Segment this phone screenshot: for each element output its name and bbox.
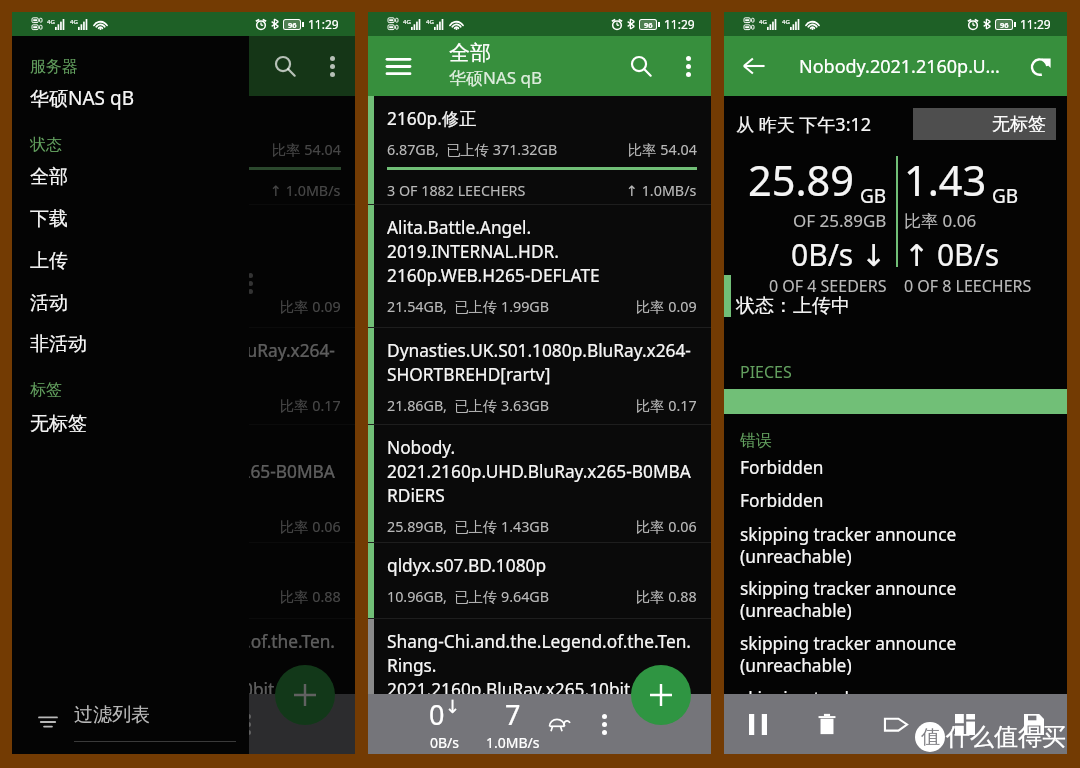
staticText: SHORTBREHD[rartv] — [31, 363, 341, 387]
button[interactable]: Nobody. — [12, 425, 355, 542]
staticText: 2160p.修正 — [31, 107, 341, 131]
button[interactable]: qldyx.s07.BD.1080p — [368, 543, 711, 618]
staticText: 比率 0.06 — [636, 517, 697, 537]
button[interactable]: Alternative speed limits — [541, 707, 575, 741]
staticText: 比率 0.88 — [636, 587, 697, 607]
staticText: ↑ 0B/s — [904, 234, 1000, 275]
staticText: 华硕NAS qB — [449, 66, 543, 89]
staticText: 0 — [429, 696, 445, 733]
staticText: 比率 0.88 — [280, 587, 341, 607]
staticText: 全部 — [30, 165, 68, 189]
button[interactable]: Add torrent — [275, 665, 335, 725]
button[interactable]: 无标签 — [12, 403, 249, 445]
button[interactable]: 华硕NAS qB — [12, 77, 249, 119]
staticText: ↓ — [89, 696, 105, 717]
staticText: 比率 0.06 — [280, 517, 341, 537]
staticText: 21.86GB, 已上传 3.63GB — [387, 396, 550, 416]
staticText: 21.54GB, 已上传 1.99GB — [31, 297, 194, 317]
staticText: 非活动 — [30, 332, 87, 356]
button[interactable]: Dynasties.UK.S01.1080p.BluRay.x264- — [12, 328, 355, 424]
staticText: skipping tracker announce (unreachable) — [740, 577, 957, 622]
staticText: 3 OF 1882 LEECHERS — [387, 181, 526, 200]
staticText: Shang-Chi.and.the.Legend.of.the.Ten. — [387, 630, 697, 654]
button[interactable]: Categories — [941, 700, 989, 748]
staticText: 2021.2160p.BluRay.x265.10bit. — [31, 678, 341, 702]
staticText: 4G — [403, 18, 411, 26]
staticText: Forbidden — [740, 456, 824, 480]
staticText: PIECES — [740, 361, 792, 383]
staticText: 7 — [505, 696, 521, 733]
button[interactable]: Alita.Battle.Angel. — [12, 205, 355, 327]
staticText: 比率 0.09 — [280, 297, 341, 317]
staticText: 错误 — [740, 431, 772, 451]
button[interactable]: Tags — [872, 700, 920, 748]
button[interactable]: 非活动 — [12, 323, 249, 365]
button[interactable]: Refresh — [1015, 40, 1067, 92]
button[interactable]: More options — [665, 43, 711, 89]
button[interactable]: Search — [617, 42, 665, 90]
button[interactable]: Open navigation drawer — [368, 36, 428, 96]
staticText: 0 OF 4 SEEDERS — [769, 275, 887, 297]
button[interactable]: Pause — [734, 700, 782, 748]
button[interactable]: Search — [261, 42, 309, 90]
button[interactable]: 2160p.修正 — [12, 96, 355, 204]
button[interactable]: More options — [586, 706, 622, 742]
staticText: 2160p.WEB.H265-DEFLATE — [31, 264, 341, 288]
button[interactable]: Add torrent — [631, 665, 691, 725]
staticText: skipping tracker announce — [740, 687, 957, 711]
staticText: 上传 — [30, 249, 68, 273]
staticText: 1.0MB/s — [130, 733, 184, 752]
staticText: 从 昨天 下午3:12 — [736, 112, 872, 137]
staticText: Dynasties.UK.S01.1080p.BluRay.x264- — [387, 339, 697, 363]
staticText: ↑ 1.0MB/s — [626, 181, 697, 200]
staticText: Nobody. — [387, 436, 697, 460]
staticText: Forbidden — [740, 489, 824, 513]
button[interactable]: Dynasties.UK.S01.1080p.BluRay.x264- — [368, 328, 711, 424]
button[interactable]: Alita.Battle.Angel. — [368, 205, 711, 327]
staticText: Rings. — [387, 654, 697, 678]
button[interactable]: Shang-Chi.and.the.Legend.of.the.Ten. — [368, 619, 711, 739]
button[interactable]: More options — [309, 43, 355, 89]
staticText: 活动 — [30, 291, 68, 315]
staticText: 比率 0.17 — [280, 396, 341, 416]
staticText: 比率 54.04 — [272, 140, 341, 160]
staticText: 什么值得买 — [946, 722, 1066, 752]
button[interactable]: Delete — [803, 700, 851, 748]
staticText: 0B/s — [74, 733, 104, 752]
staticText: 无标签 — [992, 113, 1046, 136]
staticText: 2021.2160p.BluRay.x265.10bit. — [387, 678, 697, 702]
button[interactable]: More options — [230, 706, 266, 742]
staticText: 无标签 — [30, 412, 87, 436]
button[interactable]: 无标签 — [913, 108, 1056, 140]
staticText: 96 — [1000, 20, 1009, 29]
staticText: 状态：上传中 — [736, 294, 850, 318]
staticText: 21.54GB, 已上传 1.99GB — [387, 297, 550, 317]
staticText: 11:29 — [1020, 16, 1051, 32]
staticText: 2160p.修正 — [387, 107, 697, 131]
staticText: 0 OF 8 LEECHERS — [904, 275, 1032, 297]
button[interactable]: 全部 — [12, 156, 249, 198]
staticText: 96 — [288, 20, 297, 29]
staticText: GB — [987, 183, 1019, 209]
button[interactable]: 过滤列表 — [12, 696, 249, 754]
staticText: 华硕NAS qB — [30, 85, 134, 111]
staticText: 服务器 — [30, 57, 78, 77]
button[interactable]: Save — [1010, 700, 1058, 748]
button[interactable]: Shang-Chi.and.the.Legend.of.the.Ten. — [12, 619, 355, 739]
button[interactable]: 下载 — [12, 198, 249, 240]
staticText: Nobody.2021.2160p.U... — [799, 54, 1000, 79]
button[interactable]: 2160p.修正 — [368, 96, 711, 204]
button[interactable]: qldyx.s07.BD.1080p — [12, 543, 355, 618]
staticText: 比率 0.09 — [636, 297, 697, 317]
button[interactable]: Nobody. — [368, 425, 711, 542]
staticText: 0B/s — [430, 733, 460, 752]
staticText: 6.87GB, 已上传 371.32GB — [31, 140, 202, 160]
button[interactable]: 上传 — [12, 240, 249, 282]
staticText: 2021.2160p.UHD.BluRay.x265-B0MBA — [31, 460, 341, 484]
button[interactable]: 活动 — [12, 282, 249, 324]
button[interactable]: Back — [724, 36, 784, 96]
